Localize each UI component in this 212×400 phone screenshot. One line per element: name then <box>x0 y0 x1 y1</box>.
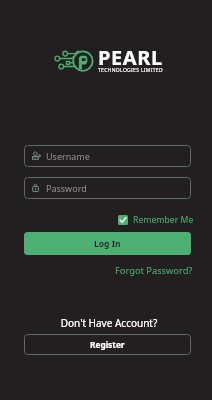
button[interactable]: Log In <box>24 232 191 255</box>
button[interactable]: Register <box>24 334 191 355</box>
button[interactable]: Username <box>24 145 191 167</box>
staticText: Don't Have Account? <box>3 316 212 330</box>
button[interactable]: Remember Me <box>118 214 194 226</box>
button[interactable]: Password <box>24 177 191 199</box>
staticText: Register <box>90 339 125 350</box>
staticText: Password <box>46 182 87 194</box>
button[interactable]: Forgot Password? <box>115 264 193 277</box>
staticText: Remember Me <box>133 214 194 226</box>
staticText: Username <box>46 150 90 162</box>
staticText: Log In <box>94 238 121 250</box>
staticText: TECHNOLOGIES LIMITED <box>98 67 163 74</box>
staticText: PEARL <box>98 44 163 71</box>
